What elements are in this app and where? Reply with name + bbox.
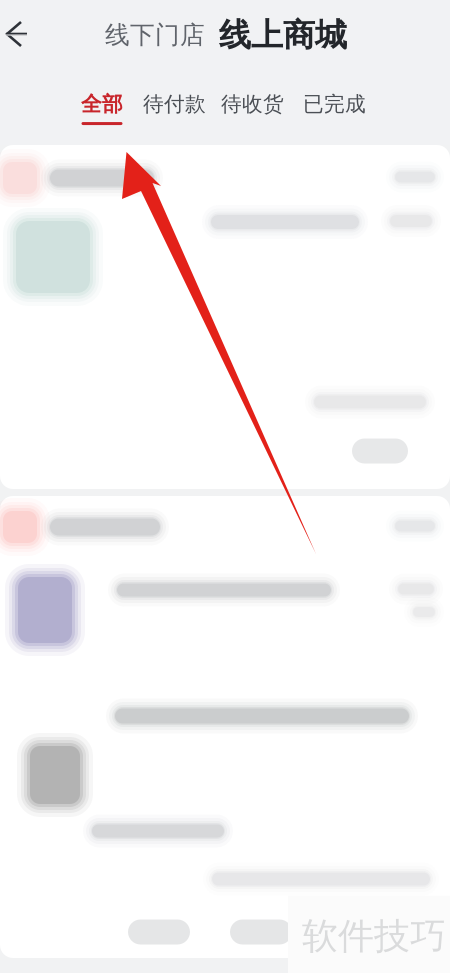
- button[interactable]: 订单操作: [352, 438, 408, 463]
- staticText: 待付款: [143, 91, 206, 117]
- button[interactable]: 待收货: [215, 70, 290, 125]
- button[interactable]: 待付款: [137, 70, 212, 125]
- staticText: 已完成: [303, 91, 366, 117]
- staticText: 待收货: [221, 91, 284, 117]
- button[interactable]: 查看物流: [230, 919, 292, 944]
- button[interactable]: 已完成: [297, 70, 372, 125]
- button[interactable]: 再次购买: [128, 919, 190, 944]
- button[interactable]: 线上商城: [213, 9, 353, 61]
- staticText: 全部: [81, 91, 123, 117]
- button[interactable]: 全部: [75, 70, 129, 125]
- button[interactable]: 线下门店: [99, 11, 211, 59]
- staticText: 软件技巧: [302, 914, 446, 959]
- button[interactable]: 返回: [0, 0, 48, 70]
- staticText: 线下门店: [105, 19, 205, 51]
- staticText: 线上商城: [219, 15, 347, 55]
